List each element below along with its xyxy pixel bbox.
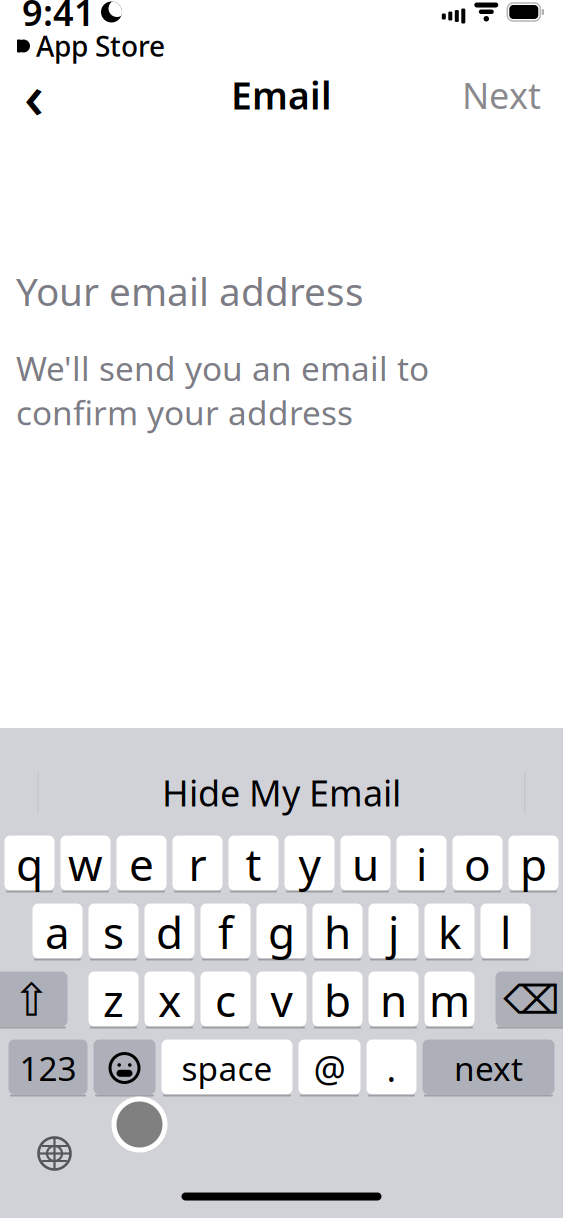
- staticText: m: [429, 971, 470, 1029]
- button[interactable]: z: [88, 971, 138, 1028]
- button[interactable]: u: [340, 835, 390, 892]
- staticText: ‹: [24, 54, 44, 136]
- button[interactable]: c: [200, 971, 250, 1028]
- staticText: k: [438, 903, 461, 961]
- staticText: We'll send you an email to confirm your …: [16, 346, 429, 434]
- button[interactable]: q: [4, 835, 54, 892]
- staticText: space: [181, 1046, 272, 1090]
- staticText: ⇧: [12, 974, 50, 1026]
- button[interactable]: m: [424, 971, 474, 1028]
- button[interactable]: g: [256, 903, 306, 960]
- staticText: a: [45, 903, 70, 961]
- button[interactable]: y: [284, 835, 334, 892]
- button[interactable]: Hide My Email: [140, 757, 423, 828]
- staticText: 9:41: [22, 0, 95, 36]
- button[interactable]: @: [298, 1039, 360, 1096]
- button[interactable]: Emoji: [93, 1039, 155, 1096]
- button[interactable]: o: [452, 835, 502, 892]
- button[interactable]: x: [144, 971, 194, 1028]
- staticText: r: [188, 835, 206, 893]
- button[interactable]: Shift: [0, 971, 67, 1028]
- staticText: w: [68, 835, 103, 893]
- staticText: s: [103, 903, 124, 961]
- button[interactable]: f: [200, 903, 250, 960]
- staticText: Email: [231, 70, 332, 120]
- staticText: y: [298, 835, 320, 893]
- button[interactable]: p: [508, 835, 558, 892]
- button[interactable]: Your email address: [0, 268, 563, 314]
- staticText: d: [156, 903, 183, 961]
- button[interactable]: Back: [10, 71, 58, 119]
- staticText: j: [388, 903, 399, 961]
- staticText: n: [380, 971, 407, 1029]
- staticText: l: [500, 903, 511, 961]
- staticText: q: [16, 835, 43, 893]
- button[interactable]: k: [424, 903, 474, 960]
- button[interactable]: a: [32, 903, 82, 960]
- button[interactable]: e: [116, 835, 166, 892]
- button[interactable]: l: [480, 903, 530, 960]
- staticText: o: [464, 835, 491, 893]
- button[interactable]: j: [368, 903, 418, 960]
- staticText: .: [386, 1044, 396, 1092]
- staticText: ⌫: [503, 977, 560, 1023]
- button[interactable]: i: [396, 835, 446, 892]
- button[interactable]: next: [422, 1039, 554, 1096]
- button[interactable]: d: [144, 903, 194, 960]
- button[interactable]: Next keyboard: [27, 1126, 81, 1180]
- staticText: g: [268, 903, 295, 961]
- staticText: t: [245, 835, 261, 893]
- staticText: p: [520, 835, 547, 893]
- button[interactable]: h: [312, 903, 362, 960]
- staticText: i: [416, 835, 427, 893]
- staticText: b: [324, 971, 351, 1029]
- button[interactable]: v: [256, 971, 306, 1028]
- button[interactable]: n: [368, 971, 418, 1028]
- button[interactable]: r: [172, 835, 222, 892]
- staticText: Your email address: [16, 265, 364, 317]
- staticText: next: [454, 1046, 523, 1090]
- staticText: z: [103, 971, 124, 1029]
- staticText: f: [218, 903, 233, 961]
- button[interactable]: b: [312, 971, 362, 1028]
- staticText: Hide My Email: [162, 769, 401, 816]
- staticText: @: [313, 1044, 345, 1092]
- button[interactable]: w: [60, 835, 110, 892]
- button[interactable]: Delete: [495, 971, 563, 1028]
- button[interactable]: 123: [8, 1039, 87, 1096]
- button[interactable]: .: [366, 1039, 416, 1096]
- button[interactable]: t: [228, 835, 278, 892]
- staticText: c: [215, 971, 236, 1029]
- staticText: 123: [19, 1046, 76, 1090]
- staticText: App Store: [36, 27, 165, 65]
- staticText: x: [158, 971, 181, 1029]
- staticText: u: [352, 835, 379, 893]
- staticText: Next: [462, 71, 541, 119]
- button[interactable]: App Store: [12, 24, 170, 68]
- button[interactable]: Next: [454, 61, 549, 129]
- staticText: h: [324, 903, 351, 961]
- staticText: e: [129, 835, 154, 893]
- button[interactable]: s: [88, 903, 138, 960]
- button[interactable]: space: [161, 1039, 292, 1096]
- staticText: v: [270, 971, 292, 1029]
